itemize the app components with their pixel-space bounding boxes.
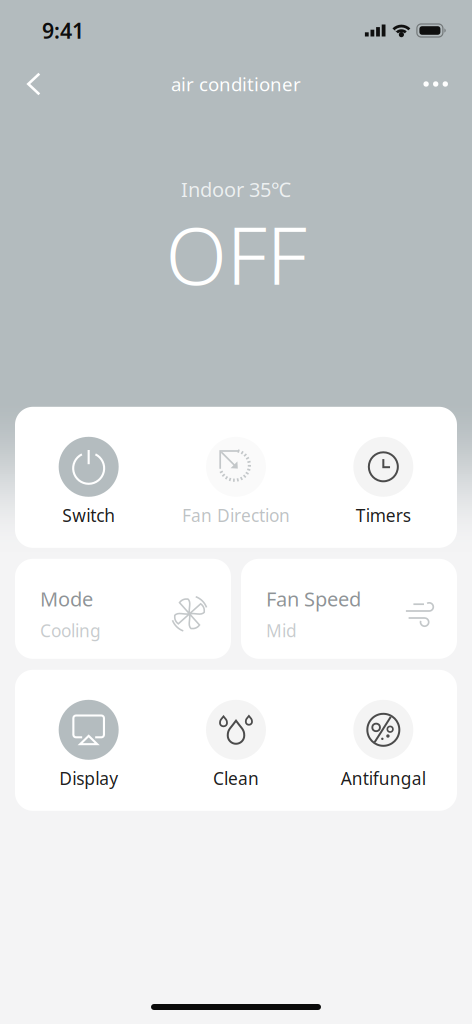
button[interactable]: Fan Speed: [241, 559, 457, 659]
staticText: Switch: [62, 504, 115, 527]
staticText: air conditioner: [171, 72, 301, 96]
button[interactable]: Antifungal: [310, 700, 457, 790]
staticText: 9:41: [42, 16, 84, 45]
button[interactable]: Fan Direction: [162, 437, 310, 527]
button[interactable]: Back: [0, 59, 61, 109]
staticText: Clean: [213, 767, 259, 790]
button[interactable]: Mode: [15, 559, 231, 659]
staticText: Mode: [40, 585, 93, 612]
button[interactable]: Clean: [162, 700, 310, 790]
staticText: Cooling: [40, 619, 101, 642]
button[interactable]: Timers: [310, 437, 457, 527]
staticText: OFF: [165, 201, 306, 307]
staticText: Fan Direction: [182, 504, 290, 527]
staticText: Fan Speed: [266, 585, 361, 612]
button[interactable]: Display: [15, 700, 162, 790]
staticText: Display: [59, 767, 118, 790]
button[interactable]: More options: [405, 63, 472, 105]
staticText: Indoor 35℃: [181, 176, 291, 203]
staticText: Timers: [356, 504, 411, 527]
staticText: Antifungal: [341, 767, 426, 790]
staticText: Mid: [266, 619, 297, 642]
button[interactable]: Switch: [15, 437, 162, 527]
